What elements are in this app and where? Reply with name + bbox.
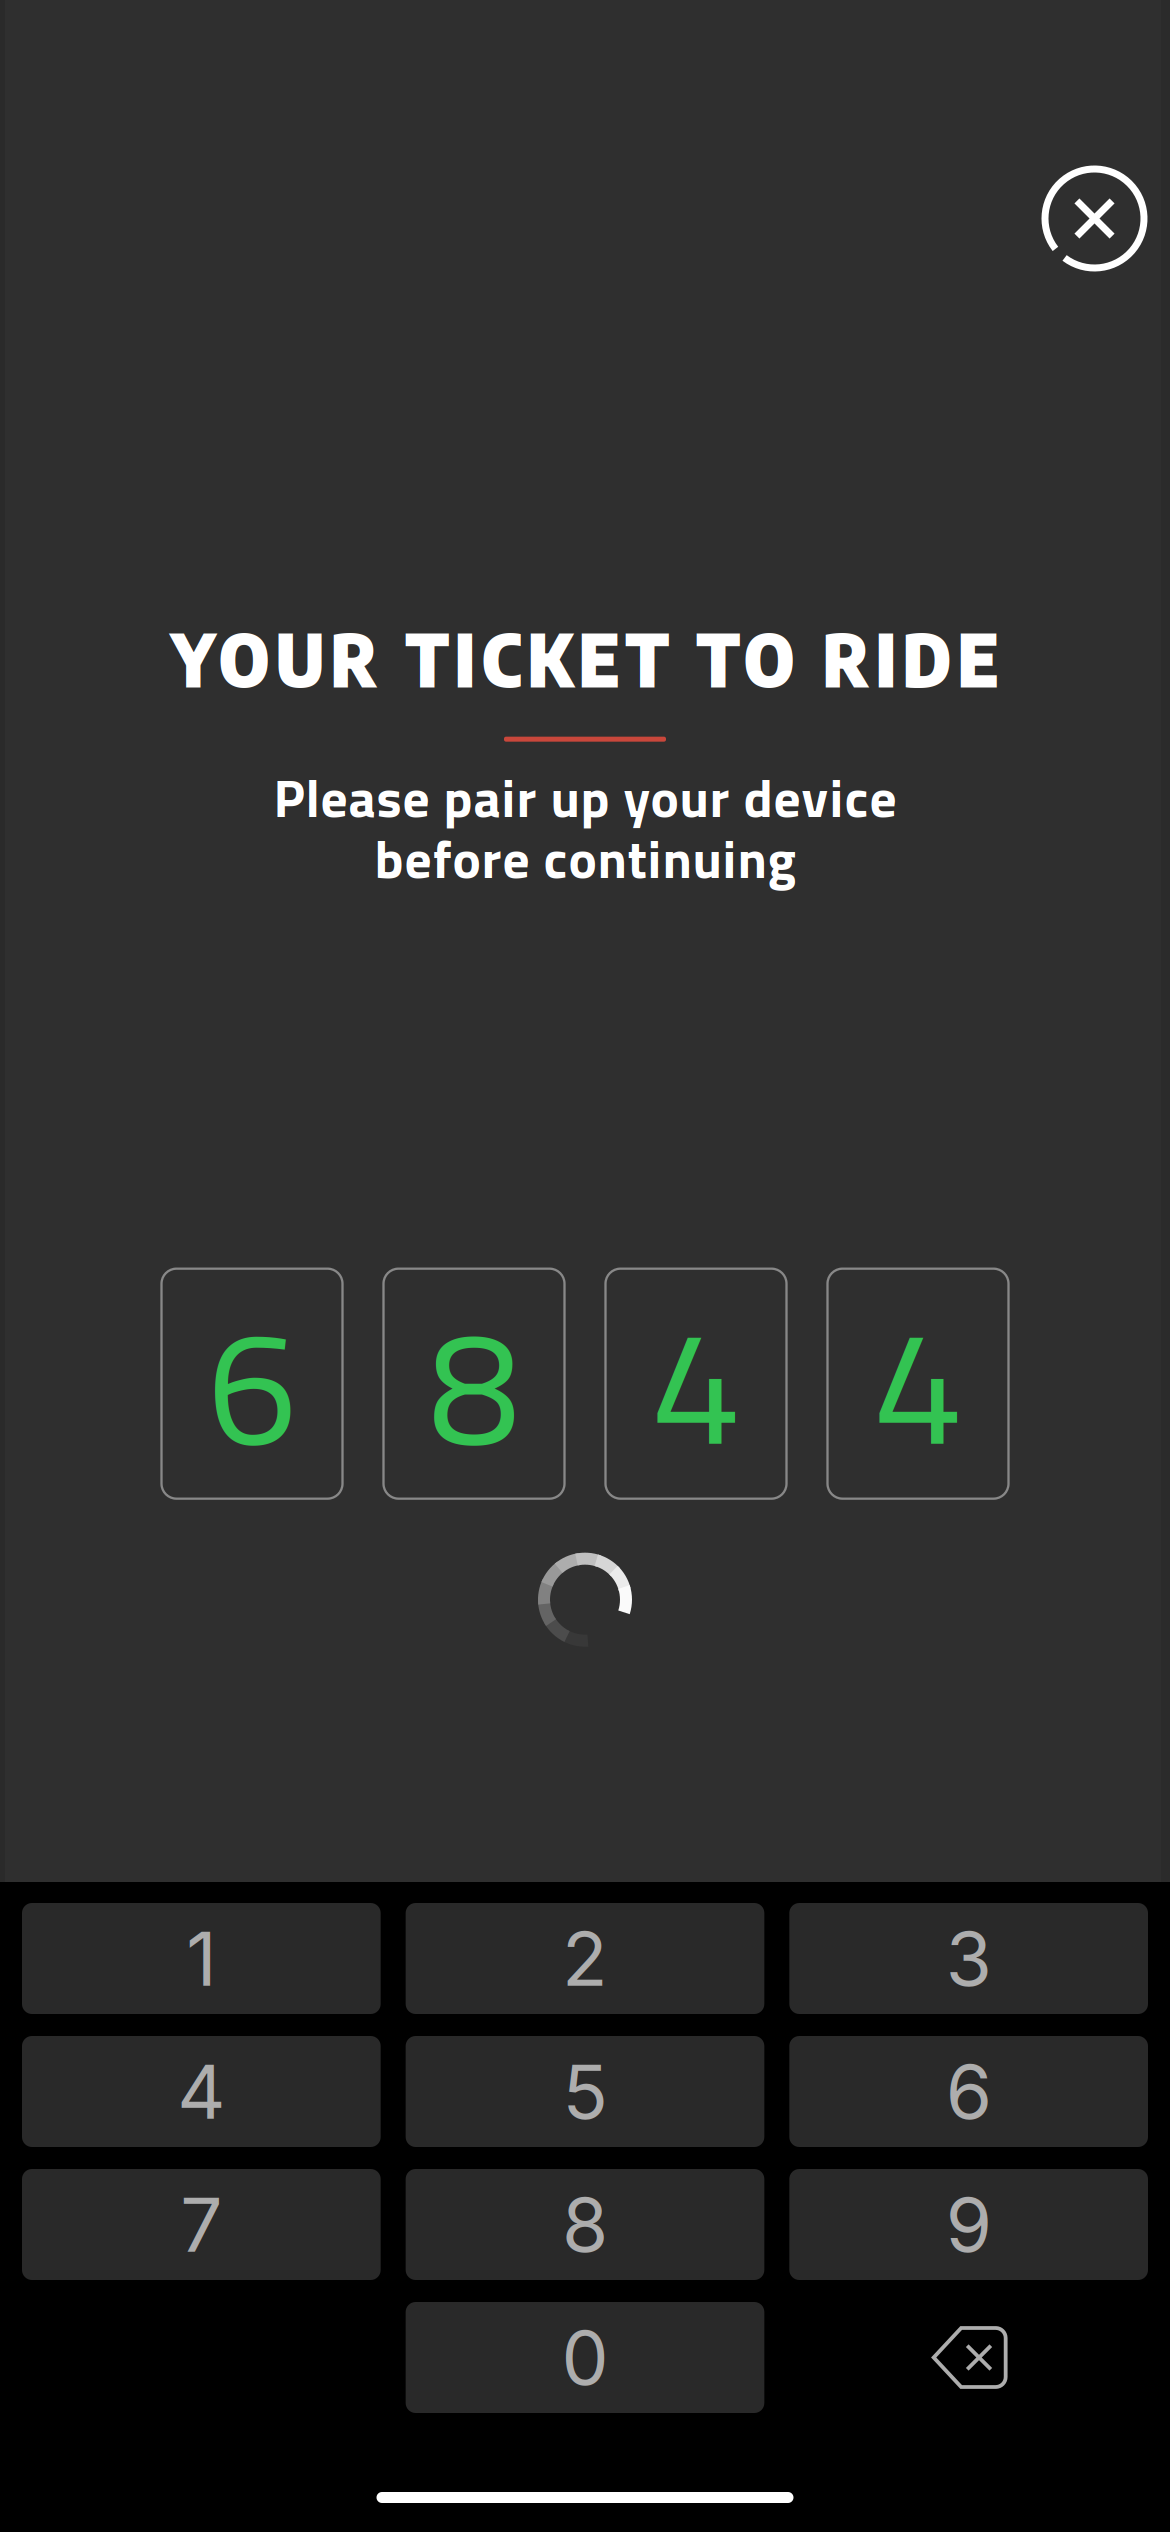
button[interactable]: 7 bbox=[22, 2169, 381, 2280]
staticText: 5 bbox=[562, 2046, 607, 2137]
staticText: 8 bbox=[562, 2179, 608, 2270]
staticText: 6 bbox=[207, 1261, 297, 1506]
staticText: 4 bbox=[177, 2046, 225, 2137]
button[interactable]: 2 bbox=[406, 1903, 764, 2014]
staticText: 6 bbox=[946, 2046, 992, 2137]
staticText: 9 bbox=[946, 2179, 992, 2270]
button[interactable]: Close bbox=[1031, 155, 1158, 282]
button[interactable]: 9 bbox=[789, 2169, 1148, 2280]
button[interactable]: 3 bbox=[789, 1903, 1148, 2014]
button[interactable]: 8 bbox=[406, 2169, 764, 2280]
staticText: 4 bbox=[873, 1261, 963, 1506]
button[interactable]: 1 bbox=[22, 1903, 381, 2014]
staticText: 3 bbox=[946, 1913, 992, 2004]
button[interactable]: 0 bbox=[406, 2302, 764, 2413]
button[interactable]: Delete bbox=[789, 2302, 1148, 2413]
button[interactable]: 4 bbox=[22, 2036, 381, 2147]
staticText: 8 bbox=[429, 1261, 519, 1506]
button[interactable]: 5 bbox=[406, 2036, 764, 2147]
staticText: before continuing bbox=[374, 818, 795, 899]
staticText: 7 bbox=[180, 2179, 222, 2270]
staticText: YOUR TICKET TO RIDE bbox=[171, 612, 998, 704]
staticText: 4 bbox=[651, 1261, 741, 1506]
staticText: 2 bbox=[562, 1913, 608, 2004]
staticText: 1 bbox=[186, 1913, 216, 2004]
staticText: Please pair up your device bbox=[273, 757, 896, 838]
button[interactable]: 6 bbox=[789, 2036, 1148, 2147]
staticText: 0 bbox=[561, 2312, 608, 2403]
